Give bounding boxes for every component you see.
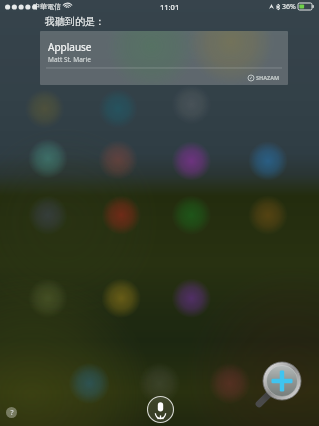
staticText: 11:01 [160, 2, 180, 12]
staticText: Matt St. Marie [48, 55, 91, 64]
staticText: 我聽到的是： [45, 15, 105, 28]
button[interactable]: Help [6, 407, 17, 418]
button[interactable]: Siri microphone [147, 396, 174, 423]
staticText: Applause [48, 40, 92, 54]
staticText: ? [10, 408, 14, 418]
button[interactable]: Applause [40, 31, 288, 85]
staticText: 中華電信 [33, 2, 61, 11]
button[interactable]: Zoom magnifier [259, 359, 309, 409]
staticText: 36% [282, 2, 296, 12]
staticText: SHAZAM [256, 74, 280, 81]
